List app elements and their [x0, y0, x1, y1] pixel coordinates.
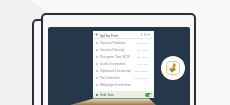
staticText: 190, 100.21 [135, 41, 149, 44]
button[interactable]: Hide Icon [93, 91, 154, 98]
staticText: 80, 020.4 [138, 55, 149, 58]
staticText: Hide Icon [100, 93, 115, 97]
button[interactable]: Quick Connection [93, 60, 154, 67]
staticText: Can I Save it [134, 69, 149, 72]
button[interactable]: Webpage Screenshot [93, 81, 154, 88]
staticText: Can I Save it [134, 76, 149, 79]
staticText: 10, 100.2 [138, 62, 149, 65]
staticText: Sound of Sadness [100, 41, 126, 45]
button[interactable]: Decrypter Text (OCR) [93, 53, 154, 60]
button[interactable]: Sound of Silently [93, 46, 154, 53]
button[interactable]: App logo [161, 56, 185, 80]
staticText: Spl for Free [100, 33, 119, 37]
staticText: Quick Connection [100, 62, 126, 66]
staticText: Webpage Screenshot [100, 83, 131, 87]
button[interactable]: Sound of Sadness [93, 39, 154, 46]
staticText: Decrypter Text (OCR) [100, 55, 131, 59]
button[interactable]: Spl for Free [93, 31, 154, 38]
staticText: Pin Controller [100, 76, 120, 80]
button[interactable]: Clipboard Connection [93, 67, 154, 74]
staticText: 90, 020.4 [138, 48, 149, 51]
button[interactable]: Pin Controller [93, 74, 154, 81]
staticText: Sound of Silently [100, 48, 125, 52]
staticText: Clipboard Connection [100, 69, 132, 73]
